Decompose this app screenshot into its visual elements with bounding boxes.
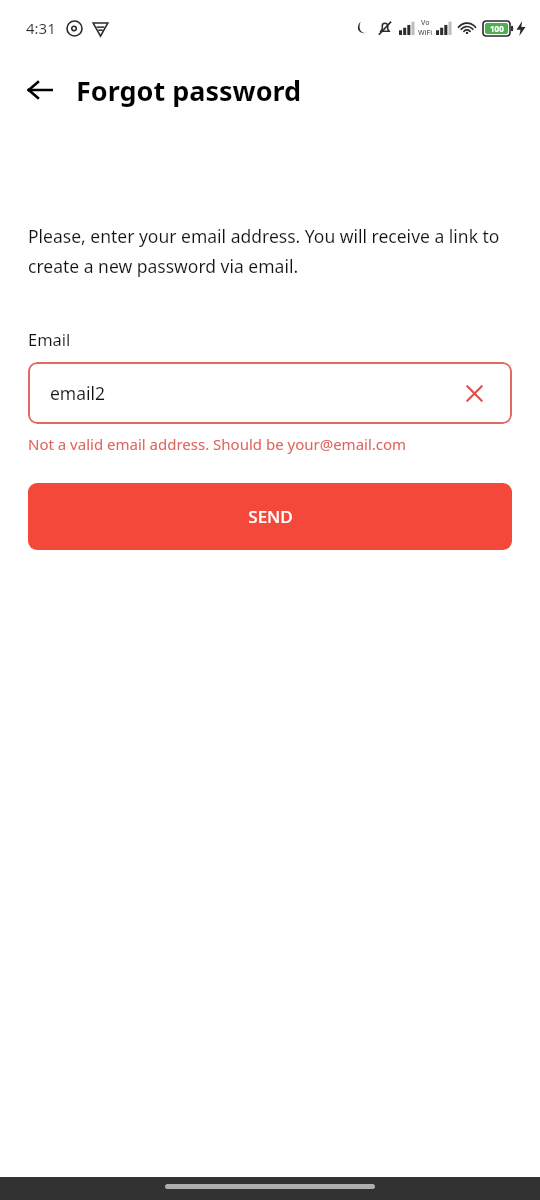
button[interactable]: Back bbox=[16, 66, 64, 114]
staticText: Forgot password bbox=[76, 72, 302, 109]
staticText: 4:31 bbox=[26, 18, 56, 38]
staticText: WiFi bbox=[418, 28, 433, 38]
staticText: Please, enter your email address. You wi… bbox=[28, 224, 512, 278]
staticText: Not a valid email address. Should be you… bbox=[28, 434, 407, 454]
button[interactable]: Clear text bbox=[460, 379, 488, 407]
staticText: email2 bbox=[50, 381, 106, 405]
staticText: Email bbox=[28, 328, 71, 350]
button[interactable]: email2 bbox=[28, 362, 512, 424]
staticText: SEND bbox=[248, 505, 293, 528]
button[interactable]: SEND bbox=[28, 483, 512, 550]
staticText: 100 bbox=[490, 23, 504, 34]
staticText: Vo bbox=[421, 18, 430, 28]
